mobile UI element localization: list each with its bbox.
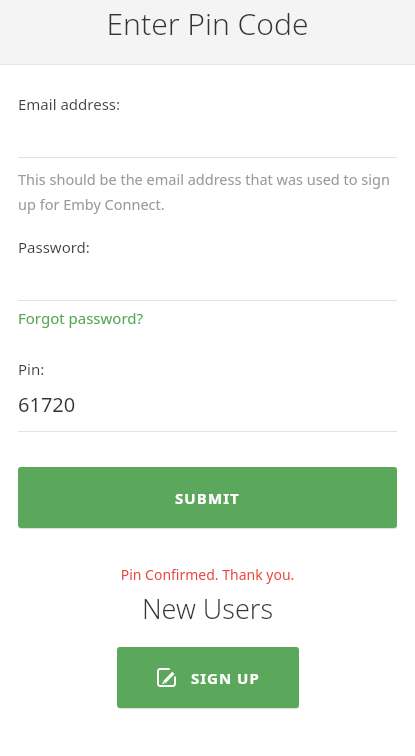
staticText: SIGN UP bbox=[191, 668, 260, 688]
staticText: Email address: bbox=[18, 94, 121, 114]
staticText: New Users bbox=[18, 590, 397, 627]
other: Sign up bbox=[157, 668, 176, 687]
staticText: Pin Confirmed. Thank you. bbox=[18, 565, 397, 584]
staticText: Pin: bbox=[18, 359, 45, 379]
staticText: SUBMIT bbox=[175, 488, 240, 508]
button[interactable]: 61720 bbox=[18, 391, 397, 418]
staticText: Password: bbox=[18, 237, 90, 257]
button[interactable]: Forgot password? bbox=[18, 305, 144, 331]
staticText: This should be the email address that wa… bbox=[18, 169, 397, 214]
staticText: Forgot password? bbox=[18, 308, 144, 328]
staticText: 61720 bbox=[18, 391, 76, 418]
button[interactable]: SUBMIT bbox=[18, 467, 397, 528]
button[interactable]: Sign up bbox=[117, 647, 299, 708]
staticText: Enter Pin Code bbox=[106, 3, 309, 44]
